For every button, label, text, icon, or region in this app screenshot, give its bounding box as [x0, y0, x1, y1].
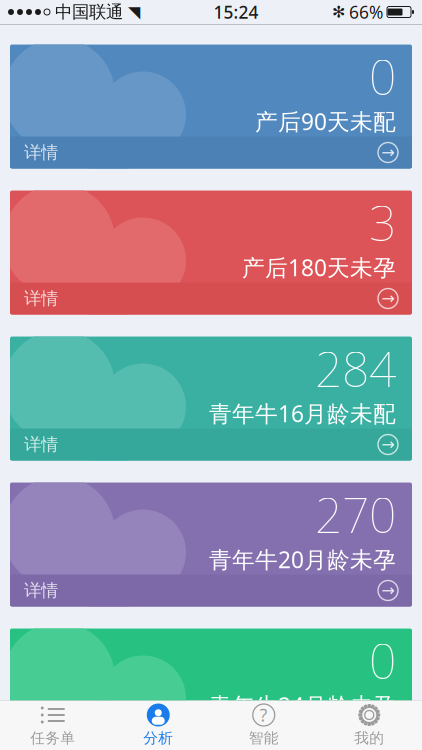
button[interactable]: 270 [10, 482, 412, 606]
staticText: 0 [369, 45, 396, 108]
staticText: 详情 [24, 580, 58, 601]
button[interactable]: 0 [10, 628, 412, 750]
staticText: 66% [349, 0, 383, 23]
button[interactable]: ? [211, 701, 316, 750]
staticText: → [381, 435, 394, 454]
staticText: → [381, 727, 394, 746]
staticText: 青年牛24月龄未孕 [209, 690, 396, 720]
staticText: 智能 [249, 729, 279, 747]
staticText: 详情 [24, 726, 58, 747]
staticText: 详情 [24, 142, 58, 163]
button[interactable]: 0 [10, 44, 412, 168]
staticText: → [381, 581, 394, 600]
staticText: 我的 [354, 729, 384, 747]
button[interactable]: 3 [10, 190, 412, 314]
button[interactable]: 284 [10, 336, 412, 460]
staticText: 中国联通 [55, 1, 123, 23]
staticText: 产后90天未配 [255, 106, 396, 136]
staticText: 产后180天未孕 [242, 252, 396, 282]
staticText: 任务单 [30, 729, 75, 747]
staticText: 284 [315, 337, 396, 400]
staticText: 详情 [24, 288, 58, 309]
staticText: 0 [369, 629, 396, 692]
button[interactable]: 分析 [105, 701, 211, 750]
staticText: 15:24 [213, 0, 258, 23]
staticText: → [381, 143, 394, 162]
button[interactable]: 我的 [316, 701, 422, 750]
staticText: 详情 [24, 434, 58, 455]
staticText: ◥ [128, 3, 140, 21]
staticText: 3 [369, 191, 396, 254]
staticText: 青年牛16月龄未配 [209, 398, 396, 428]
button[interactable]: 任务单 [0, 701, 105, 750]
staticText: 270 [315, 483, 396, 546]
staticText: 青年牛20月龄未孕 [209, 544, 396, 574]
staticText: → [381, 289, 394, 308]
staticText: 分析 [143, 729, 173, 747]
staticText: ? [260, 703, 268, 726]
staticText: ✻ [332, 3, 345, 21]
